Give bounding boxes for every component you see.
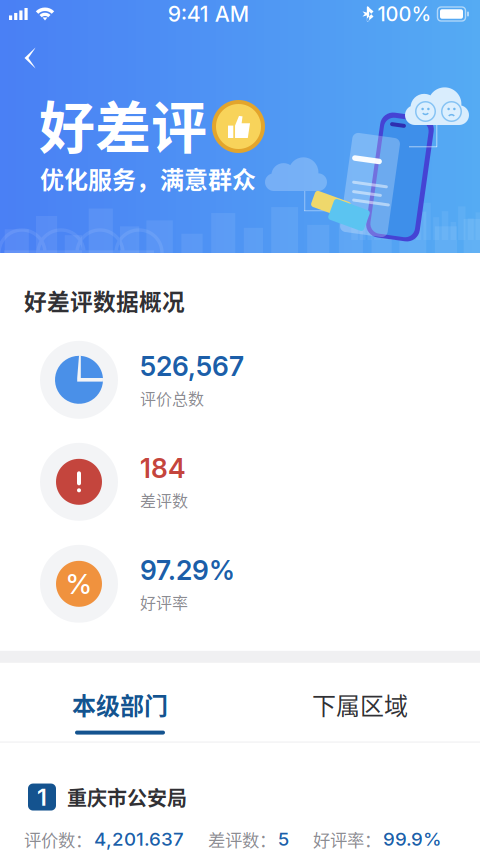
staticText: 4,201.637	[94, 828, 184, 850]
staticText: 差评数：	[208, 826, 276, 852]
staticText: 9:41 AM	[168, 1, 249, 27]
staticText: 评价总数	[140, 386, 204, 410]
staticText: 184	[140, 452, 186, 484]
staticText: 重庆市公安局	[67, 783, 187, 812]
staticText: 526,567	[140, 350, 244, 382]
staticText: 优化服务，满意群众	[40, 161, 256, 196]
button[interactable]: 1	[0, 743, 480, 852]
staticText: 差评数	[140, 488, 188, 512]
staticText: 好差评	[39, 83, 207, 164]
staticText: 好评率：	[313, 826, 381, 852]
staticText: 5	[278, 828, 289, 850]
staticText: 好评率	[140, 590, 188, 614]
staticText: 下属区域	[312, 687, 408, 722]
staticText: %	[65, 567, 92, 601]
button[interactable]: 下属区域	[240, 663, 480, 742]
staticText: 97.29%	[140, 554, 235, 586]
button[interactable]: 本级部门	[0, 663, 240, 742]
staticText: 评价数：	[24, 826, 92, 852]
staticText: 99.9%	[383, 828, 442, 850]
button[interactable]: Back	[8, 36, 52, 80]
staticText: 好差评数据概况	[24, 284, 185, 317]
staticText: 本级部门	[72, 687, 168, 722]
staticText: 100%	[377, 2, 431, 26]
staticText: 1	[37, 782, 47, 811]
